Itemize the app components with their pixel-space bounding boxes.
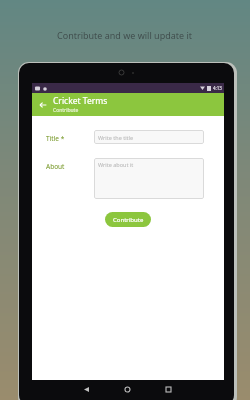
staticText: Cricket Terms bbox=[53, 95, 108, 107]
staticText: About bbox=[46, 162, 65, 171]
button[interactable]: Recents bbox=[158, 382, 178, 396]
button[interactable]: Write the title bbox=[94, 130, 204, 144]
staticText: 4:13 bbox=[213, 85, 222, 91]
button[interactable]: Write about it bbox=[94, 158, 204, 199]
staticText: Contribute bbox=[53, 107, 79, 114]
staticText: Title * bbox=[46, 134, 65, 143]
staticText: Contribute bbox=[113, 216, 144, 224]
staticText: Write about it bbox=[98, 161, 134, 168]
button[interactable]: Back bbox=[76, 382, 96, 396]
button[interactable]: Back bbox=[36, 98, 50, 112]
button[interactable]: Home bbox=[117, 382, 137, 396]
staticText: Write the title bbox=[98, 134, 134, 141]
button[interactable]: Contribute bbox=[105, 212, 151, 227]
staticText: Contribute and we will update it bbox=[57, 29, 193, 41]
